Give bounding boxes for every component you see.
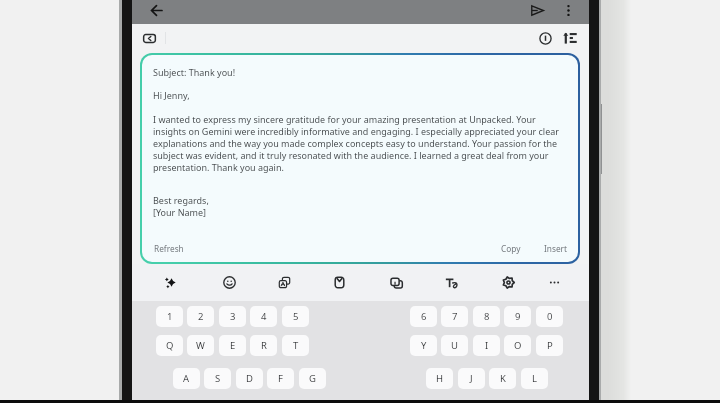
button[interactable]: Info: [534, 27, 556, 49]
staticText: T: [293, 339, 299, 352]
button[interactable]: Back: [144, 0, 168, 22]
staticText: Y: [421, 339, 427, 352]
button[interactable]: 7: [441, 306, 468, 327]
staticText: Q: [166, 339, 174, 352]
staticText: 2: [198, 310, 204, 323]
button[interactable]: Send: [525, 0, 549, 22]
button[interactable]: Stickers: [271, 264, 297, 301]
button[interactable]: G: [299, 368, 326, 389]
staticText: Refresh: [154, 243, 184, 254]
staticText: F: [278, 372, 283, 385]
staticText: U: [451, 339, 458, 352]
staticText: S: [215, 372, 221, 385]
staticText: L: [532, 372, 537, 385]
button[interactable]: F: [267, 368, 294, 389]
button[interactable]: E: [219, 335, 246, 356]
staticText: [Your Name]: [153, 206, 207, 218]
button[interactable]: Collapse: [138, 27, 160, 49]
staticText: 0: [547, 310, 553, 323]
button[interactable]: Subject: Thank you!: [142, 55, 578, 262]
button[interactable]: T: [282, 335, 309, 356]
staticText: E: [230, 339, 236, 352]
button[interactable]: Split screen: [384, 264, 410, 301]
button[interactable]: 2: [187, 306, 214, 327]
staticText: 3: [230, 310, 236, 323]
staticText: Best regards,: [153, 194, 209, 206]
button[interactable]: Y: [410, 335, 437, 356]
button[interactable]: Formatting: [559, 27, 581, 49]
staticText: G: [309, 372, 316, 385]
button[interactable]: More options: [556, 0, 580, 22]
button[interactable]: AI assist: [157, 264, 183, 301]
staticText: K: [500, 372, 506, 385]
button[interactable]: D: [236, 368, 263, 389]
button[interactable]: Copy: [501, 238, 521, 259]
button[interactable]: Clipboard: [326, 264, 352, 301]
button[interactable]: Q: [156, 335, 183, 356]
button[interactable]: Refresh: [154, 238, 184, 259]
staticText: Subject: Thank you!: [153, 66, 236, 78]
staticText: O: [514, 339, 522, 352]
button[interactable]: A: [173, 368, 200, 389]
button[interactable]: H: [426, 368, 453, 389]
staticText: Copy: [501, 243, 521, 254]
staticText: P: [547, 339, 553, 352]
button[interactable]: Handwriting: [439, 264, 465, 301]
staticText: D: [246, 372, 253, 385]
staticText: 7: [452, 310, 458, 323]
button[interactable]: S: [204, 368, 231, 389]
staticText: 1: [167, 310, 173, 323]
staticText: 8: [484, 310, 490, 323]
staticText: Hi Jenny,: [153, 89, 190, 101]
button[interactable]: U: [441, 335, 468, 356]
button[interactable]: O: [504, 335, 531, 356]
button[interactable]: R: [250, 335, 277, 356]
button[interactable]: W: [187, 335, 214, 356]
button[interactable]: 8: [473, 306, 500, 327]
staticText: I wanted to express my sincere gratitude…: [153, 113, 567, 173]
button[interactable]: J: [458, 368, 485, 389]
staticText: J: [470, 372, 473, 385]
button[interactable]: Settings: [495, 264, 521, 301]
button[interactable]: 5: [282, 306, 309, 327]
button[interactable]: 6: [410, 306, 437, 327]
button[interactable]: 4: [250, 306, 277, 327]
staticText: Insert: [544, 243, 568, 254]
button[interactable]: I: [473, 335, 500, 356]
staticText: I: [485, 339, 489, 352]
button[interactable]: More: [541, 264, 567, 301]
staticText: A: [183, 372, 190, 385]
staticText: 5: [293, 310, 299, 323]
button[interactable]: 3: [219, 306, 246, 327]
button[interactable]: Insert: [544, 238, 568, 259]
button[interactable]: L: [521, 368, 548, 389]
staticText: R: [261, 339, 267, 352]
button[interactable]: 1: [156, 306, 183, 327]
staticText: 6: [421, 310, 427, 323]
button[interactable]: K: [489, 368, 516, 389]
staticText: 9: [515, 310, 521, 323]
staticText: 4: [261, 310, 267, 323]
staticText: H: [436, 372, 444, 385]
button[interactable]: P: [536, 335, 563, 356]
button[interactable]: 9: [504, 306, 531, 327]
button[interactable]: 0: [536, 306, 563, 327]
button[interactable]: Emoji: [216, 264, 242, 301]
staticText: W: [196, 339, 205, 352]
